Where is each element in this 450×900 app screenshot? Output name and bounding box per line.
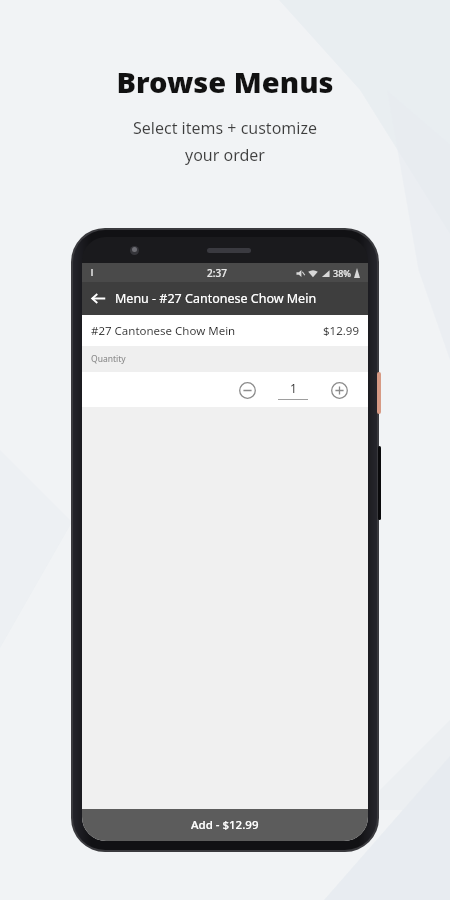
staticText: Quantity	[91, 353, 126, 365]
button[interactable]: #27 Cantonese Chow Mein	[82, 315, 368, 346]
button[interactable]: Back	[82, 282, 115, 315]
staticText: Browse Menus	[116, 62, 334, 101]
staticText: your order	[185, 144, 265, 166]
staticText: 38%	[333, 267, 351, 279]
staticText: Select items + customize	[133, 117, 317, 139]
staticText: 2:37	[207, 266, 227, 280]
staticText: 1	[290, 380, 297, 396]
staticText: Add - $12.99	[191, 817, 259, 833]
button[interactable]: Increase quantity	[326, 377, 352, 403]
staticText: $12.99	[323, 323, 359, 339]
button[interactable]: Decrease quantity	[234, 377, 260, 403]
button[interactable]: Add - $12.99	[82, 809, 368, 841]
staticText: Menu - #27 Cantonese Chow Mein	[115, 290, 317, 307]
staticText: #27 Cantonese Chow Mein	[91, 323, 236, 339]
